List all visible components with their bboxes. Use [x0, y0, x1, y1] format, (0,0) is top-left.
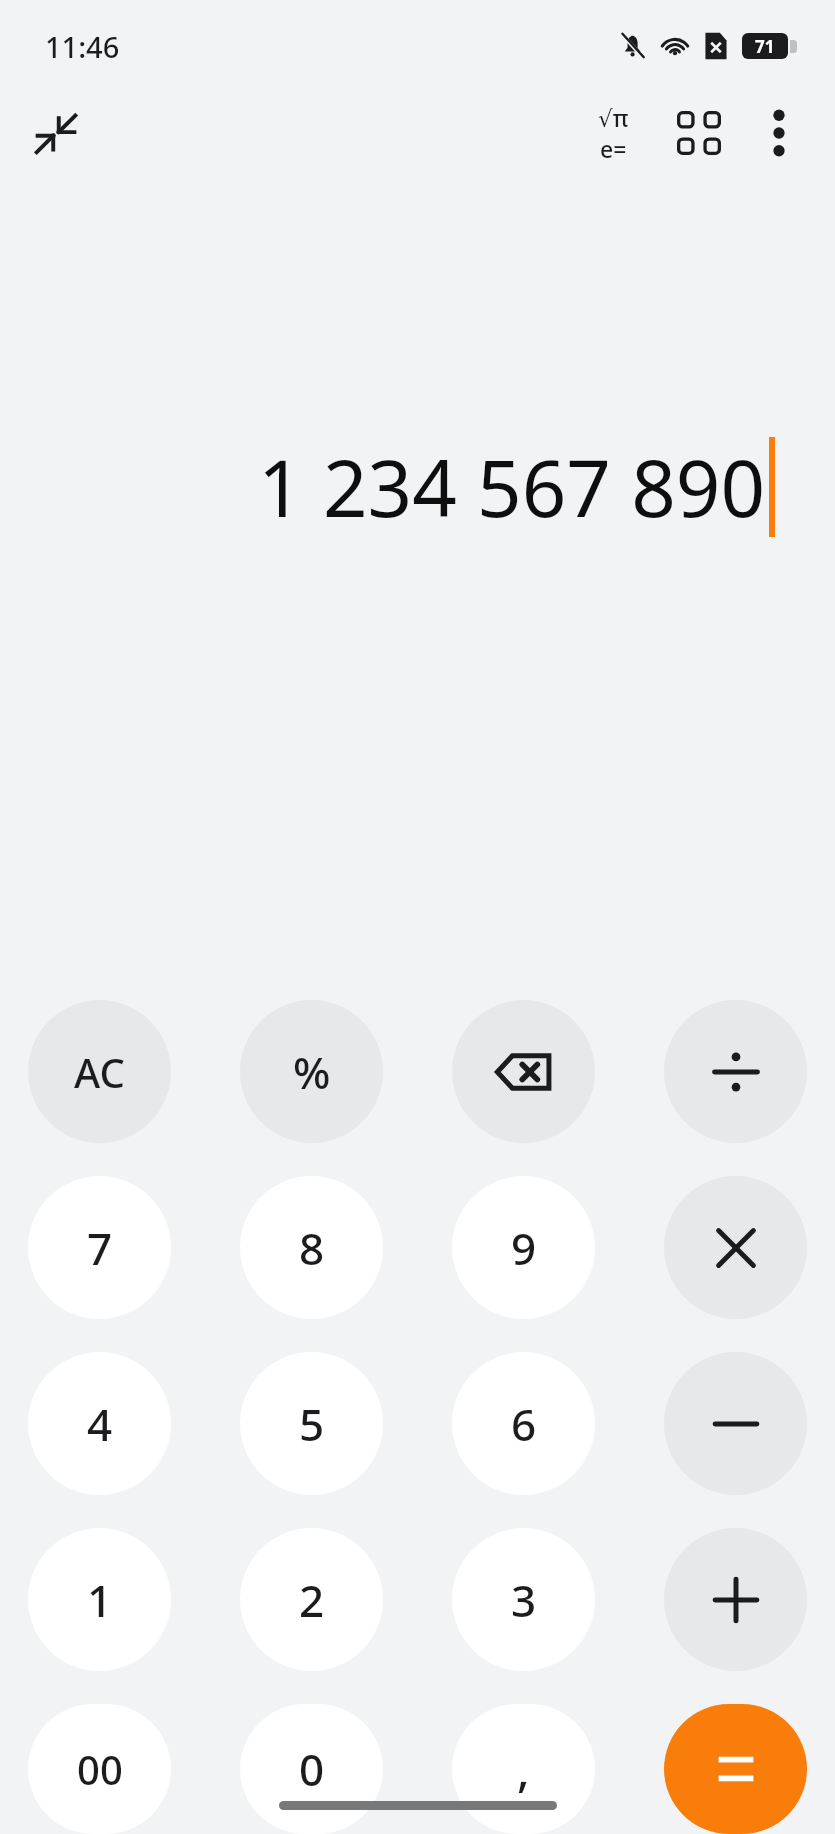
staticText: √π: [598, 102, 629, 133]
button[interactable]: Subtract: [664, 1352, 807, 1495]
button[interactable]: 2: [240, 1528, 383, 1671]
button[interactable]: 5: [240, 1352, 383, 1495]
button[interactable]: Collapse: [18, 95, 94, 171]
staticText: 9: [511, 1218, 537, 1278]
button[interactable]: 7: [28, 1176, 171, 1319]
button[interactable]: ,: [452, 1704, 595, 1834]
button[interactable]: 3: [452, 1528, 595, 1671]
staticText: 5: [299, 1394, 325, 1454]
button[interactable]: Keypad layout: [661, 95, 737, 171]
button[interactable]: %: [240, 1000, 383, 1143]
staticText: e=: [600, 133, 627, 164]
button[interactable]: Equals: [664, 1704, 807, 1834]
staticText: 2: [299, 1570, 325, 1630]
button[interactable]: More options: [741, 95, 817, 171]
staticText: 3: [511, 1570, 537, 1630]
button[interactable]: AC: [28, 1000, 171, 1143]
staticText: ,: [517, 1738, 530, 1801]
button[interactable]: 4: [28, 1352, 171, 1495]
button[interactable]: 8: [240, 1176, 383, 1319]
staticText: %: [293, 1042, 331, 1102]
staticText: 4: [87, 1394, 113, 1454]
button[interactable]: Scientific mode: [575, 95, 651, 171]
button[interactable]: Add: [664, 1528, 807, 1671]
staticText: 1 234 567 890: [257, 434, 765, 540]
button[interactable]: Divide: [664, 1000, 807, 1143]
button[interactable]: 9: [452, 1176, 595, 1319]
button[interactable]: 6: [452, 1352, 595, 1495]
button[interactable]: Backspace: [452, 1000, 595, 1143]
staticText: 7: [87, 1218, 113, 1278]
button[interactable]: 1: [28, 1528, 171, 1671]
staticText: 6: [511, 1394, 537, 1454]
staticText: 00: [77, 1742, 123, 1796]
staticText: 0: [299, 1739, 325, 1799]
staticText: 71: [755, 35, 775, 58]
staticText: AC: [74, 1045, 125, 1099]
staticText: 1: [87, 1570, 113, 1630]
button[interactable]: 00: [28, 1704, 171, 1834]
button[interactable]: 0: [240, 1704, 383, 1834]
staticText: 8: [299, 1218, 325, 1278]
staticText: 11:46: [45, 27, 120, 66]
button[interactable]: Multiply: [664, 1176, 807, 1319]
